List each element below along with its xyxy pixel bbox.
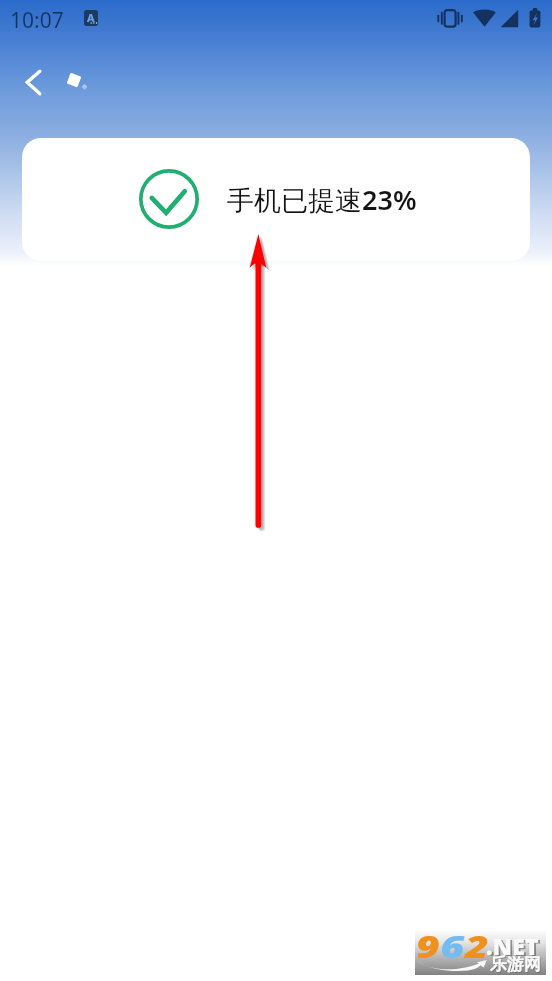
staticText: 6: [440, 927, 465, 967]
button[interactable]: Back: [5, 60, 49, 104]
staticText: 2: [465, 927, 489, 967]
button[interactable]: 手机已提速23%: [22, 138, 530, 261]
staticText: A: [87, 10, 95, 25]
staticText: .NET: [488, 931, 541, 962]
staticText: 手机已提速23%: [227, 181, 417, 218]
staticText: .NET: [486, 930, 539, 961]
staticText: 9: [416, 927, 440, 967]
staticText: 乐游网: [491, 955, 541, 976]
button[interactable]: Accessibility: [84, 10, 98, 26]
staticText: 乐游网: [490, 954, 540, 975]
staticText: 10:07: [10, 6, 64, 35]
